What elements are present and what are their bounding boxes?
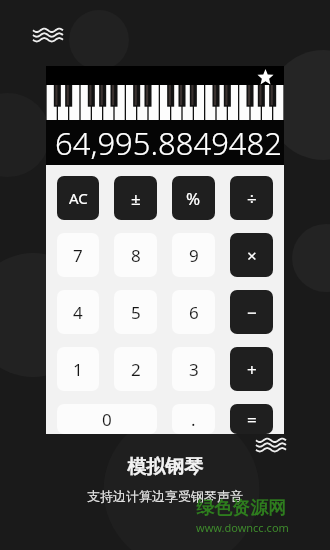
staticText: 7	[73, 244, 83, 267]
staticText: www.downcc.com	[196, 520, 289, 535]
staticText: 2	[131, 358, 141, 381]
button[interactable]: ×	[230, 233, 273, 277]
button[interactable]: .	[172, 404, 215, 434]
button[interactable]: Favorite	[257, 69, 274, 86]
button[interactable]: AC	[57, 176, 99, 220]
button[interactable]: 6	[172, 290, 215, 334]
staticText: ±	[131, 187, 141, 210]
staticText: 1	[73, 358, 83, 381]
staticText: 绿色资源网	[196, 497, 286, 520]
staticText: ×	[247, 244, 257, 267]
button[interactable]: 8	[114, 233, 157, 277]
button[interactable]: %	[172, 176, 215, 220]
button[interactable]: 1	[57, 347, 99, 391]
staticText: 64,995.8849482	[55, 122, 282, 164]
button[interactable]: ÷	[230, 176, 273, 220]
button[interactable]: 4	[57, 290, 99, 334]
staticText: AC	[69, 188, 88, 208]
button[interactable]: 0	[57, 404, 157, 434]
button[interactable]: 3	[172, 347, 215, 391]
staticText: 9	[189, 244, 199, 267]
button[interactable]: Piano keyboard	[46, 85, 284, 120]
staticText: =	[247, 408, 257, 431]
button[interactable]: 7	[57, 233, 99, 277]
button[interactable]: ±	[114, 176, 157, 220]
staticText: 4	[73, 301, 83, 324]
staticText: 模拟钢琴	[127, 455, 203, 479]
staticText: .	[191, 408, 196, 431]
staticText: %	[186, 187, 201, 210]
staticText: 0	[102, 408, 112, 431]
button[interactable]: 5	[114, 290, 157, 334]
staticText: 6	[189, 301, 199, 324]
staticText: +	[247, 358, 257, 381]
button[interactable]: 2	[114, 347, 157, 391]
button[interactable]: 9	[172, 233, 215, 277]
staticText: ÷	[247, 187, 257, 210]
button[interactable]: =	[230, 404, 273, 434]
staticText: 支持边计算边享受钢琴声音	[87, 488, 243, 504]
button[interactable]: −	[230, 290, 273, 334]
staticText: −	[247, 301, 257, 324]
button[interactable]: +	[230, 347, 273, 391]
staticText: 5	[131, 301, 141, 324]
staticText: 8	[131, 244, 141, 267]
staticText: 3	[189, 358, 199, 381]
